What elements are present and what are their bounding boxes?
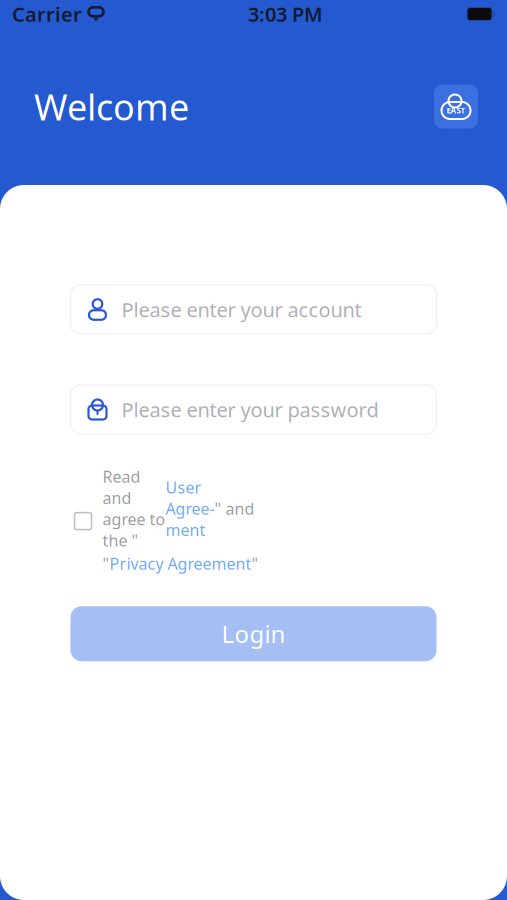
staticText: " <box>102 553 109 574</box>
staticText: " and <box>214 498 254 519</box>
staticText: User Agreement <box>165 477 214 540</box>
button[interactable]: Please enter your account <box>70 285 436 334</box>
staticText: Carrier <box>12 1 82 27</box>
staticText: Privacy Agreement <box>109 553 251 574</box>
staticText: Please enter your account <box>121 296 361 323</box>
staticText: Welcome <box>34 83 189 130</box>
button[interactable]: Please enter your password <box>70 385 436 434</box>
button[interactable]: Login <box>70 606 436 661</box>
staticText: Read and agree to the " <box>102 466 165 551</box>
staticText: Please enter your password <box>121 396 378 423</box>
staticText: " <box>251 553 258 574</box>
button[interactable]: EAST Cloud <box>434 84 478 128</box>
button[interactable]: User Agreement <box>165 477 214 540</box>
staticText: Login <box>221 618 285 650</box>
staticText: EAST <box>446 105 465 116</box>
staticText: 3:03 PM <box>248 1 323 27</box>
button[interactable]: Agree to terms <box>74 511 102 530</box>
button[interactable]: Privacy Agreement <box>109 553 251 574</box>
